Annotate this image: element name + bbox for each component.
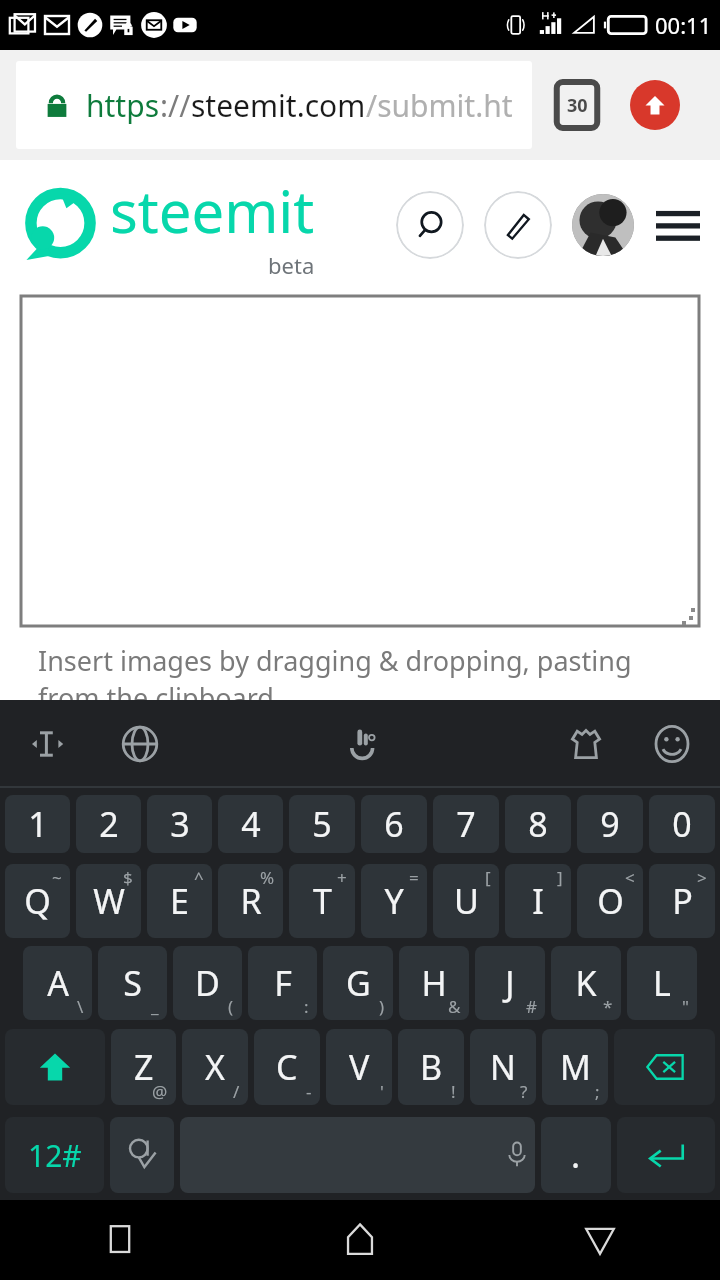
staticText: + xyxy=(337,866,347,889)
staticText: > xyxy=(697,866,707,889)
button[interactable]: A xyxy=(23,946,92,1020)
staticText: H xyxy=(421,960,447,1006)
staticText: " xyxy=(682,995,689,1018)
button[interactable]: 6 xyxy=(361,795,427,853)
button[interactable]: Profile xyxy=(572,194,634,256)
button[interactable]: Space xyxy=(180,1117,535,1193)
button[interactable]: N xyxy=(470,1029,536,1105)
button[interactable]: . xyxy=(541,1117,611,1193)
button[interactable]: Back xyxy=(480,1200,720,1280)
button[interactable]: Search xyxy=(396,191,464,259)
staticText: Y xyxy=(384,878,404,924)
staticText: ? xyxy=(520,1080,528,1103)
button[interactable]: J xyxy=(475,946,545,1020)
button[interactable]: Cursor control xyxy=(20,716,76,772)
button[interactable]: T xyxy=(289,864,355,938)
staticText: * xyxy=(603,995,613,1018)
staticText: O xyxy=(597,878,624,924)
staticText: P xyxy=(672,878,693,924)
button[interactable]: 5 xyxy=(289,795,355,853)
staticText: 2 xyxy=(99,801,119,847)
button[interactable]: Menu xyxy=(650,197,706,253)
button[interactable]: H xyxy=(399,946,469,1020)
staticText: 7 xyxy=(456,801,476,847)
staticText: 3 xyxy=(170,801,190,847)
staticText: % xyxy=(260,866,275,889)
button[interactable]: R xyxy=(218,864,283,938)
staticText: ) xyxy=(379,995,385,1018)
staticText: 12# xyxy=(28,1135,82,1176)
button[interactable]: Change language xyxy=(112,716,168,772)
staticText: ' xyxy=(380,1080,384,1103)
staticText: N xyxy=(490,1044,516,1090)
staticText: E xyxy=(170,878,189,924)
staticText: A xyxy=(47,960,69,1006)
button[interactable]: M xyxy=(542,1029,608,1105)
button[interactable]: V xyxy=(326,1029,392,1105)
staticText: R xyxy=(240,878,262,924)
staticText: 9 xyxy=(600,801,620,847)
button[interactable]: I xyxy=(505,864,571,938)
button[interactable]: 7 xyxy=(433,795,499,853)
button[interactable]: Z xyxy=(111,1029,176,1105)
button[interactable]: D xyxy=(173,946,242,1020)
button[interactable]: Handwriting xyxy=(335,716,391,772)
staticText: / xyxy=(233,1080,240,1103)
button[interactable]: Backspace xyxy=(614,1029,715,1105)
button[interactable]: Enter xyxy=(617,1117,715,1193)
staticText: Q xyxy=(24,878,51,924)
staticText: 1 xyxy=(28,801,48,847)
button[interactable]: Q xyxy=(5,864,70,938)
button[interactable]: 2 xyxy=(76,795,141,853)
staticText: steemit xyxy=(110,171,315,250)
button[interactable]: L xyxy=(627,946,697,1020)
staticText: steemit.com xyxy=(191,85,366,126)
button[interactable]: Home xyxy=(240,1200,480,1280)
button[interactable]: Y xyxy=(361,864,427,938)
button[interactable]: B xyxy=(398,1029,464,1105)
button[interactable]: F xyxy=(248,946,317,1020)
button[interactable]: https xyxy=(16,61,532,149)
button[interactable]: W xyxy=(76,864,141,938)
button[interactable]: O xyxy=(577,864,643,938)
button[interactable]: 4 xyxy=(218,795,283,853)
staticText: ( xyxy=(228,995,234,1018)
staticText: $ xyxy=(123,866,133,889)
button[interactable]: Language xyxy=(110,1117,174,1193)
button[interactable]: 3 xyxy=(147,795,212,853)
button[interactable]: U xyxy=(433,864,499,938)
button[interactable]: 8 xyxy=(505,795,571,853)
staticText: ~ xyxy=(52,866,62,889)
staticText: [ xyxy=(485,866,491,889)
button[interactable]: C xyxy=(254,1029,320,1105)
button[interactable]: 9 xyxy=(577,795,643,853)
button[interactable]: X xyxy=(182,1029,248,1105)
staticText: ! xyxy=(451,1080,456,1103)
button[interactable]: Themes xyxy=(558,716,614,772)
staticText: B xyxy=(420,1044,443,1090)
button[interactable]: E xyxy=(147,864,212,938)
staticText: S xyxy=(123,960,142,1006)
staticText: @ xyxy=(152,1080,168,1103)
button[interactable]: P xyxy=(649,864,715,938)
staticText: : xyxy=(304,995,309,1018)
staticText: _ xyxy=(151,995,159,1018)
button[interactable]: K xyxy=(551,946,621,1020)
button[interactable]: Update xyxy=(630,80,680,130)
button[interactable]: Emoji xyxy=(644,716,700,772)
staticText: G xyxy=(346,960,371,1006)
button[interactable]: 12# xyxy=(5,1117,104,1193)
staticText: D xyxy=(195,960,220,1006)
button[interactable]: 0 xyxy=(649,795,715,853)
button[interactable]: Recents xyxy=(0,1200,240,1280)
staticText: 8 xyxy=(528,801,548,847)
button[interactable]: Shift xyxy=(5,1029,105,1105)
button[interactable] xyxy=(21,296,699,626)
button[interactable]: Compose post xyxy=(484,191,552,259)
staticText: 0 xyxy=(672,801,692,847)
button[interactable]: G xyxy=(323,946,393,1020)
button[interactable]: S xyxy=(98,946,167,1020)
button[interactable]: 1 xyxy=(5,795,70,853)
staticText: - xyxy=(306,1080,312,1103)
button[interactable]: Tabs xyxy=(554,82,600,128)
